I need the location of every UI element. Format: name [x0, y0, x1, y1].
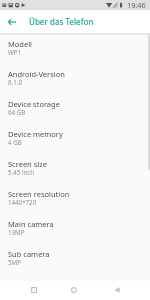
button[interactable]: Back: [100, 281, 150, 300]
staticText: 8.1.0: [8, 78, 22, 86]
staticText: 5.45 inch: [8, 168, 35, 176]
staticText: Android-Version: [8, 69, 65, 79]
staticText: Screen resolution: [8, 189, 70, 199]
staticText: 4 GB: [8, 138, 22, 146]
button[interactable]: Device memory: [0, 128, 150, 158]
button[interactable]: Screen size: [0, 158, 150, 188]
staticText: 5MP: [8, 258, 21, 266]
staticText: Main camera: [8, 219, 54, 229]
button[interactable]: Screen resolution: [0, 188, 150, 218]
staticText: WP1: [8, 48, 22, 56]
staticText: 13MP: [8, 228, 25, 236]
button[interactable]: Android-Version: [0, 68, 150, 98]
staticText: 64 GB: [8, 108, 26, 116]
button[interactable]: Main camera: [0, 218, 150, 248]
button[interactable]: Home: [50, 281, 100, 300]
staticText: 1440*720: [8, 198, 37, 206]
button[interactable]: Recents: [0, 281, 50, 300]
staticText: Sub camera: [8, 249, 50, 259]
staticText: 19:46: [127, 0, 146, 10]
button[interactable]: Modell: [0, 38, 150, 68]
button[interactable]: Back: [0, 12, 20, 32]
staticText: Screen size: [8, 159, 47, 169]
staticText: Über das Telefon: [29, 16, 94, 27]
staticText: Modell: [8, 39, 33, 49]
staticText: Device storage: [8, 99, 60, 109]
button[interactable]: Sub camera: [0, 248, 150, 278]
staticText: Device memory: [8, 129, 63, 139]
button[interactable]: Device storage: [0, 98, 150, 128]
